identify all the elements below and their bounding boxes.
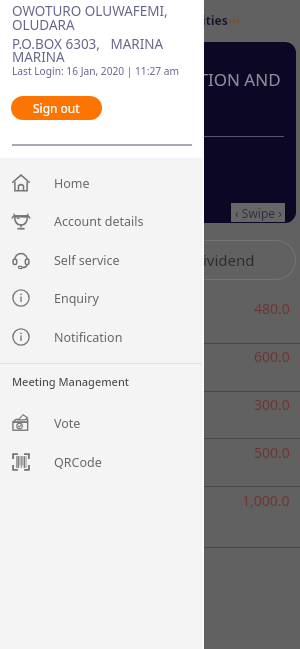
staticText: Dividend (192, 250, 255, 270)
staticText: 1,000.0 (242, 491, 290, 510)
staticText: Notification (54, 329, 123, 346)
staticText: Self service (54, 252, 120, 269)
staticText: Vote (54, 415, 81, 432)
button[interactable]: Self service (0, 241, 204, 279)
staticText: Home (54, 175, 90, 192)
staticText: OWOTURO OLUWAFEMI, OLUDARA (12, 2, 180, 34)
staticText: P.O.BOX 6303, MARINA MARINA (12, 35, 167, 66)
staticText: Last Login: 16 Jan, 2020 | 11:27 am (12, 64, 179, 78)
staticText: 600.0 (254, 347, 290, 366)
button[interactable]: QRCode (0, 443, 204, 481)
staticText: Equities (180, 12, 228, 28)
staticText: ‹ Swipe › (235, 205, 282, 221)
button[interactable]: Enquiry (0, 279, 204, 317)
button[interactable]: Home (0, 164, 204, 202)
button[interactable]: Dividend (133, 241, 295, 279)
staticText: Enquiry (54, 290, 99, 307)
button[interactable]: ‹ Swipe › (231, 203, 285, 222)
staticText: QRCode (54, 454, 102, 471)
staticText: 480.0 (254, 299, 290, 318)
button[interactable]: 600.0 (0, 343, 300, 369)
button[interactable]: 1,000.0 (0, 487, 300, 513)
button[interactable]: 300.0 (0, 391, 300, 417)
button[interactable]: 480.0 (0, 295, 300, 321)
staticText: APPLICATION AND (132, 68, 281, 91)
button[interactable]: 500.0 (0, 439, 300, 465)
staticText: Meeting Management (12, 374, 130, 389)
staticText: 300.0 (254, 395, 290, 414)
staticText: Account details (54, 213, 144, 230)
button[interactable]: Sign out (11, 96, 102, 120)
staticText: ››› (228, 12, 241, 27)
staticText: Sign out (33, 100, 80, 116)
button[interactable]: Equities (180, 12, 241, 28)
button[interactable]: Notification (0, 318, 204, 356)
button[interactable]: Account details (0, 202, 204, 240)
staticText: 500.0 (254, 443, 290, 462)
button[interactable]: Vote (0, 404, 204, 442)
